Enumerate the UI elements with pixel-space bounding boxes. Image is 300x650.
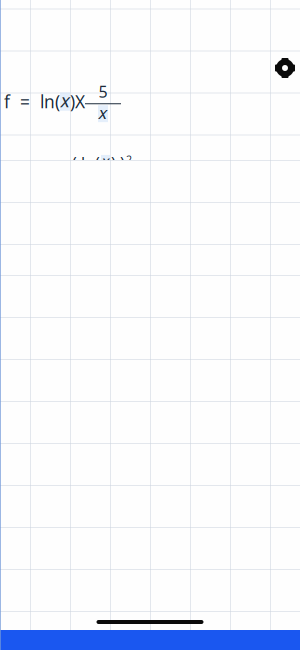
button[interactable]: =: [168, 538, 211, 571]
staticText: ) ): [111, 152, 125, 173]
staticText: 5: [98, 81, 107, 102]
staticText: X: [183, 408, 196, 435]
staticText: ): [231, 508, 237, 533]
button[interactable]: Settings: [274, 47, 300, 79]
staticText: 4: [94, 474, 105, 501]
staticText: F =: [4, 164, 33, 187]
button[interactable]: 5: [123, 472, 166, 503]
staticText: 2: [139, 507, 150, 534]
staticText: 𝑥: [101, 155, 110, 171]
staticText: 6:30: [12, 14, 50, 39]
button[interactable]: Sin(𝑥): [0, 505, 31, 536]
button[interactable]: 4: [78, 472, 121, 503]
button[interactable]: √: [33, 406, 76, 437]
staticText: Sin(𝑥): [0, 512, 29, 529]
staticText: f =: [4, 90, 30, 113]
button[interactable]: Cos(𝑥): [0, 472, 31, 503]
staticText: 𝑥: [98, 105, 108, 122]
button[interactable]: −: [213, 472, 256, 503]
staticText: 5: [139, 474, 150, 501]
button[interactable]: ÷: [213, 406, 256, 437]
button[interactable]: 9: [168, 439, 211, 470]
staticText: ln(: [40, 90, 60, 113]
staticText: 6: [184, 474, 195, 501]
button[interactable]: 7: [78, 439, 121, 470]
staticText: +: [229, 441, 240, 468]
staticText: 7: [94, 441, 105, 468]
staticText: ( ln(: [72, 152, 100, 173]
staticText: ÷: [229, 408, 240, 435]
button[interactable]: 1: [78, 505, 121, 536]
staticText: −: [228, 474, 240, 501]
staticText: )X: [70, 90, 85, 113]
button[interactable]: +: [213, 439, 256, 470]
staticText: =: [184, 543, 194, 566]
button[interactable]: ln(x): [78, 406, 121, 437]
staticText: ◗: [262, 17, 271, 36]
staticText: 𝑥²: [45, 441, 63, 468]
staticText: 9: [184, 441, 195, 468]
button[interactable]: 3: [168, 505, 211, 536]
button[interactable]: ): [213, 505, 256, 536]
button[interactable]: 6: [168, 472, 211, 503]
button[interactable]: 0: [78, 538, 166, 571]
button[interactable]: 𝑥²: [33, 439, 76, 470]
button[interactable]: X: [168, 406, 211, 437]
staticText: Cos(𝑥): [0, 470, 29, 505]
staticText: 8: [139, 441, 150, 468]
button[interactable]: ✖: [0, 406, 31, 437]
button[interactable]: 2: [123, 505, 166, 536]
staticText: 𝑥: [60, 92, 70, 111]
button[interactable]: 8: [123, 439, 166, 470]
staticText: ln(x): [80, 410, 118, 433]
staticText: 3: [184, 507, 195, 534]
staticText: 2: [126, 152, 132, 166]
button[interactable]: Add expression: [0, 353, 23, 379]
staticText: 1: [94, 507, 105, 534]
button[interactable]: 𝑥: [0, 439, 31, 470]
